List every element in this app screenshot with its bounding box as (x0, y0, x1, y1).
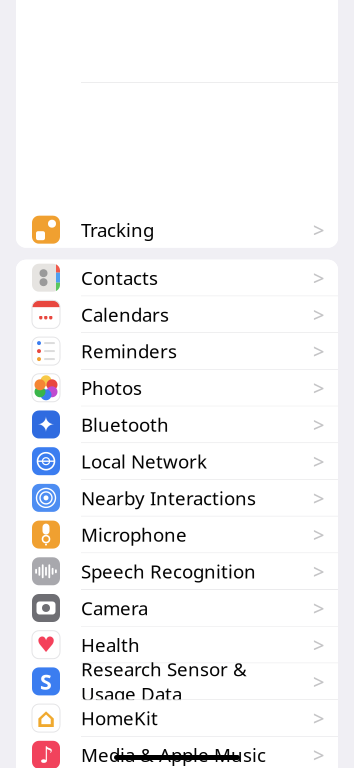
button[interactable]: ♪ (16, 737, 338, 768)
staticText: > (313, 301, 324, 328)
button[interactable]: Contacts (16, 260, 338, 296)
staticText: > (313, 485, 324, 511)
staticText: ✦ (37, 412, 55, 437)
staticText: Calendars (81, 302, 169, 327)
staticText: > (313, 264, 324, 291)
staticText: Camera (81, 596, 148, 620)
button[interactable]: Camera (16, 590, 338, 627)
staticText: Photos (81, 375, 142, 400)
staticText: Research Sensor & Usage Data (81, 657, 247, 706)
staticText: Microphone (81, 522, 187, 547)
button[interactable]: Speech Recognition (16, 553, 338, 590)
button[interactable]: Nearby Interactions (16, 480, 338, 517)
staticText: Nearby Interactions (81, 485, 256, 510)
staticText: > (313, 521, 324, 548)
staticText: HomeKit (81, 706, 158, 730)
button[interactable]: ⌂ (16, 700, 338, 737)
staticText: > (313, 558, 324, 585)
staticText: ⌂ (36, 703, 55, 733)
button[interactable]: Reminders (16, 333, 338, 370)
staticText: > (313, 338, 324, 364)
staticText: > (313, 411, 324, 438)
button[interactable]: ✦ (16, 406, 338, 443)
staticText: Health (81, 632, 140, 657)
staticText: Tracking (81, 217, 154, 242)
staticText: > (313, 595, 324, 621)
button[interactable]: ••• (16, 296, 338, 333)
staticText: S (40, 667, 52, 695)
button[interactable]: Tracking (16, 212, 338, 248)
staticText: Local Network (81, 449, 207, 474)
staticText: Bluetooth (81, 412, 169, 437)
staticText: > (313, 448, 324, 474)
staticText: > (313, 705, 324, 731)
staticText: > (313, 216, 324, 243)
staticText: Contacts (81, 265, 158, 290)
staticText: Speech Recognition (81, 559, 256, 584)
staticText: Media & Apple Music (81, 742, 266, 767)
staticText: Reminders (81, 339, 177, 363)
staticText: > (313, 631, 324, 658)
staticText: ••• (38, 310, 53, 326)
staticText: ♥ (36, 633, 55, 657)
staticText: > (313, 374, 324, 401)
staticText: ♪ (39, 742, 53, 768)
button[interactable]: S (16, 663, 338, 700)
button[interactable]: Photos (16, 370, 338, 406)
staticText: > (313, 741, 324, 768)
button[interactable]: ♥ (16, 627, 338, 663)
button[interactable]: Microphone (16, 517, 338, 553)
button[interactable]: Local Network (16, 443, 338, 480)
staticText: > (313, 668, 324, 695)
